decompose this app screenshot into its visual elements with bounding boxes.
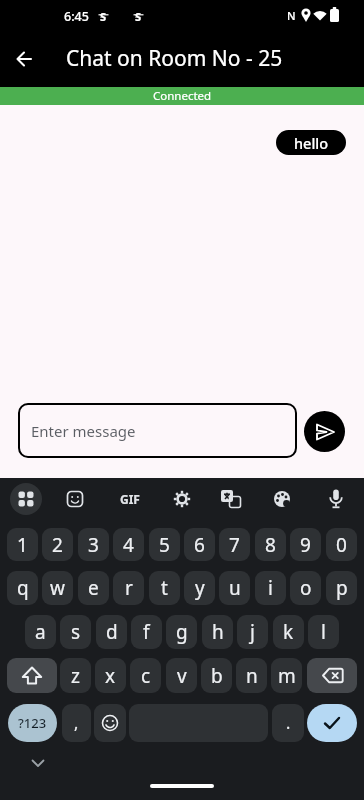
staticText: hello xyxy=(294,133,329,153)
button[interactable]: 7 xyxy=(219,528,250,561)
staticText: u xyxy=(229,575,241,601)
staticText: Enter message xyxy=(31,421,136,441)
staticText: 6 xyxy=(194,532,205,558)
staticText: . xyxy=(286,712,291,734)
button[interactable]: ?123 xyxy=(8,704,57,742)
button[interactable] xyxy=(304,411,345,452)
button[interactable]: e xyxy=(78,571,109,605)
button[interactable] xyxy=(307,704,357,742)
button[interactable]: 0 xyxy=(326,528,357,561)
button[interactable]: 1 xyxy=(7,528,38,561)
button[interactable] xyxy=(31,759,45,768)
button[interactable] xyxy=(307,658,357,693)
button[interactable]: , xyxy=(62,704,91,742)
staticText: 9 xyxy=(300,532,311,558)
staticText: g xyxy=(176,619,188,645)
button[interactable] xyxy=(66,490,84,508)
staticText: 4 xyxy=(123,532,134,558)
button[interactable] xyxy=(16,51,32,67)
button[interactable]: u xyxy=(219,571,250,605)
staticText: w xyxy=(50,575,65,601)
staticText: c xyxy=(141,663,151,689)
button[interactable]: 2 xyxy=(42,528,73,561)
staticText: 1 xyxy=(17,532,28,558)
button[interactable]: x xyxy=(95,658,126,693)
button[interactable]: y xyxy=(184,571,215,605)
staticText: h xyxy=(212,619,224,645)
staticText: k xyxy=(283,619,294,645)
button[interactable]: GIF xyxy=(117,486,143,512)
button[interactable]: 3 xyxy=(78,528,109,561)
button[interactable]: s xyxy=(60,615,91,649)
button[interactable]: b xyxy=(201,658,232,693)
button[interactable]: j xyxy=(237,615,268,649)
staticText: j xyxy=(250,619,255,645)
staticText: n xyxy=(246,663,258,689)
button[interactable]: l xyxy=(308,615,339,649)
staticText: S xyxy=(100,9,107,24)
button[interactable]: p xyxy=(326,571,357,605)
button[interactable]: Enter message xyxy=(18,403,297,458)
staticText: 2 xyxy=(52,532,63,558)
button[interactable]: q xyxy=(7,571,38,605)
staticText: i xyxy=(268,575,273,601)
staticText: 0 xyxy=(336,532,347,558)
staticText: a xyxy=(35,619,46,645)
staticText: z xyxy=(71,663,80,689)
button[interactable]: i xyxy=(255,571,286,605)
button[interactable]: w xyxy=(42,571,73,605)
staticText: y xyxy=(195,575,205,601)
button[interactable] xyxy=(10,483,42,515)
staticText: 8 xyxy=(265,532,276,558)
staticText: 7 xyxy=(229,532,240,558)
button[interactable] xyxy=(328,489,344,509)
button[interactable]: 9 xyxy=(290,528,321,561)
button[interactable]: g xyxy=(166,615,197,649)
button[interactable]: 8 xyxy=(255,528,286,561)
staticText: v xyxy=(177,663,187,689)
button[interactable]: h xyxy=(202,615,233,649)
staticText: Chat on Room No - 25 xyxy=(66,44,283,73)
button[interactable]: a xyxy=(25,615,56,649)
button[interactable]: 5 xyxy=(149,528,180,561)
staticText: ?123 xyxy=(18,714,47,732)
staticText: 5 xyxy=(159,532,170,558)
staticText: 6:45 xyxy=(64,8,89,25)
staticText: e xyxy=(88,575,99,601)
staticText: q xyxy=(17,575,29,601)
button[interactable]: v xyxy=(166,658,197,693)
staticText: 3 xyxy=(88,532,99,558)
button[interactable] xyxy=(273,490,291,508)
button[interactable]: . xyxy=(272,704,304,742)
button[interactable]: r xyxy=(113,571,144,605)
button[interactable]: m xyxy=(271,658,302,693)
staticText: l xyxy=(321,619,326,645)
button[interactable]: t xyxy=(149,571,180,605)
button[interactable] xyxy=(94,704,126,742)
staticText: s xyxy=(71,619,81,645)
button[interactable]: 6 xyxy=(184,528,215,561)
button[interactable]: k xyxy=(273,615,304,649)
staticText: N xyxy=(287,8,296,23)
button[interactable]: f xyxy=(131,615,162,649)
button[interactable]: d xyxy=(96,615,127,649)
staticText: GIF xyxy=(120,491,140,507)
button[interactable]: 4 xyxy=(113,528,144,561)
staticText: f xyxy=(143,619,150,645)
button[interactable] xyxy=(7,658,57,693)
button[interactable]: n xyxy=(236,658,267,693)
staticText: b xyxy=(211,663,223,689)
staticText: p xyxy=(336,575,348,601)
button[interactable] xyxy=(173,490,191,508)
button[interactable] xyxy=(221,490,241,508)
staticText: , xyxy=(74,712,79,734)
button[interactable]: o xyxy=(290,571,321,605)
staticText: t xyxy=(161,575,168,601)
staticText: r xyxy=(125,575,133,601)
staticText: x xyxy=(105,663,116,689)
button[interactable]: c xyxy=(130,658,161,693)
staticText: Connected xyxy=(153,88,212,104)
staticText: d xyxy=(106,619,118,645)
button[interactable]: z xyxy=(60,658,91,693)
